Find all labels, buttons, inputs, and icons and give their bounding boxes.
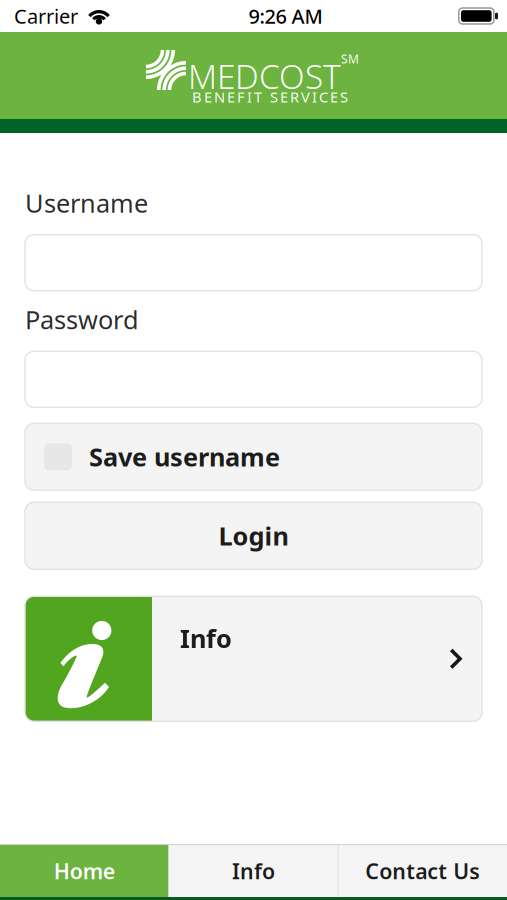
staticText: Login [218,519,288,553]
button[interactable]: Save username [25,423,482,490]
staticText: Contact Us [365,857,480,885]
staticText: 9:26 AM [248,3,322,29]
button[interactable]: Login [25,502,482,569]
staticText: SM [341,51,359,67]
staticText: B E N E F I T S E R V I C E S [192,87,348,106]
staticText: Home [54,857,115,885]
staticText: Password [25,303,139,336]
button[interactable]: Contact Us [339,845,507,897]
staticText: MEDCOST [188,54,341,98]
staticText: Info [232,857,275,885]
staticText: Info [180,621,232,655]
button[interactable]: Info [169,845,338,897]
staticText: Carrier [14,3,78,29]
staticText: Save username [89,440,280,474]
staticText: Username [25,186,148,220]
button[interactable]: Info [25,596,482,721]
button[interactable]: Home [0,845,168,897]
